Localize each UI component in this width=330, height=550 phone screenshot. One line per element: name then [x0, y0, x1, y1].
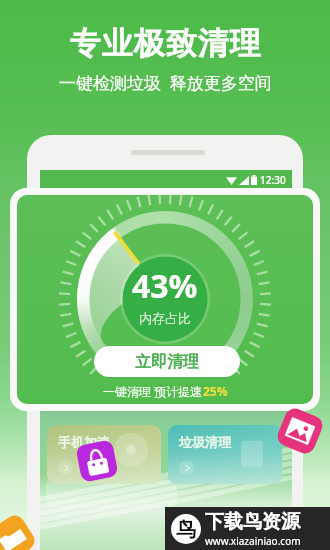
staticText: 手机加速: [58, 434, 110, 450]
staticText: 一键检测垃圾 释放更多空间: [59, 71, 272, 94]
staticText: 内存占比: [139, 310, 191, 326]
staticText: 一键清理 预计提速: [103, 383, 203, 399]
staticText: 鸟: [176, 517, 196, 542]
staticText: 专业极致清理: [69, 24, 261, 63]
button[interactable]: 手机加速: [47, 425, 161, 484]
button[interactable]: 立即清理: [94, 346, 240, 377]
staticText: 下载鸟资源: [205, 510, 300, 534]
staticText: 12:30: [260, 173, 286, 187]
staticText: 立即清理: [135, 352, 199, 372]
staticText: www.xiazainiao.com: [205, 534, 301, 548]
button[interactable]: Files app: [0, 512, 38, 550]
button[interactable]: 垃圾清理: [168, 425, 282, 484]
staticText: 43%: [132, 264, 198, 308]
button[interactable]: Shopping app: [74, 438, 120, 484]
staticText: 垃圾清理: [179, 434, 231, 450]
button[interactable]: Gallery app: [274, 405, 326, 457]
staticText: 25%: [203, 383, 228, 399]
